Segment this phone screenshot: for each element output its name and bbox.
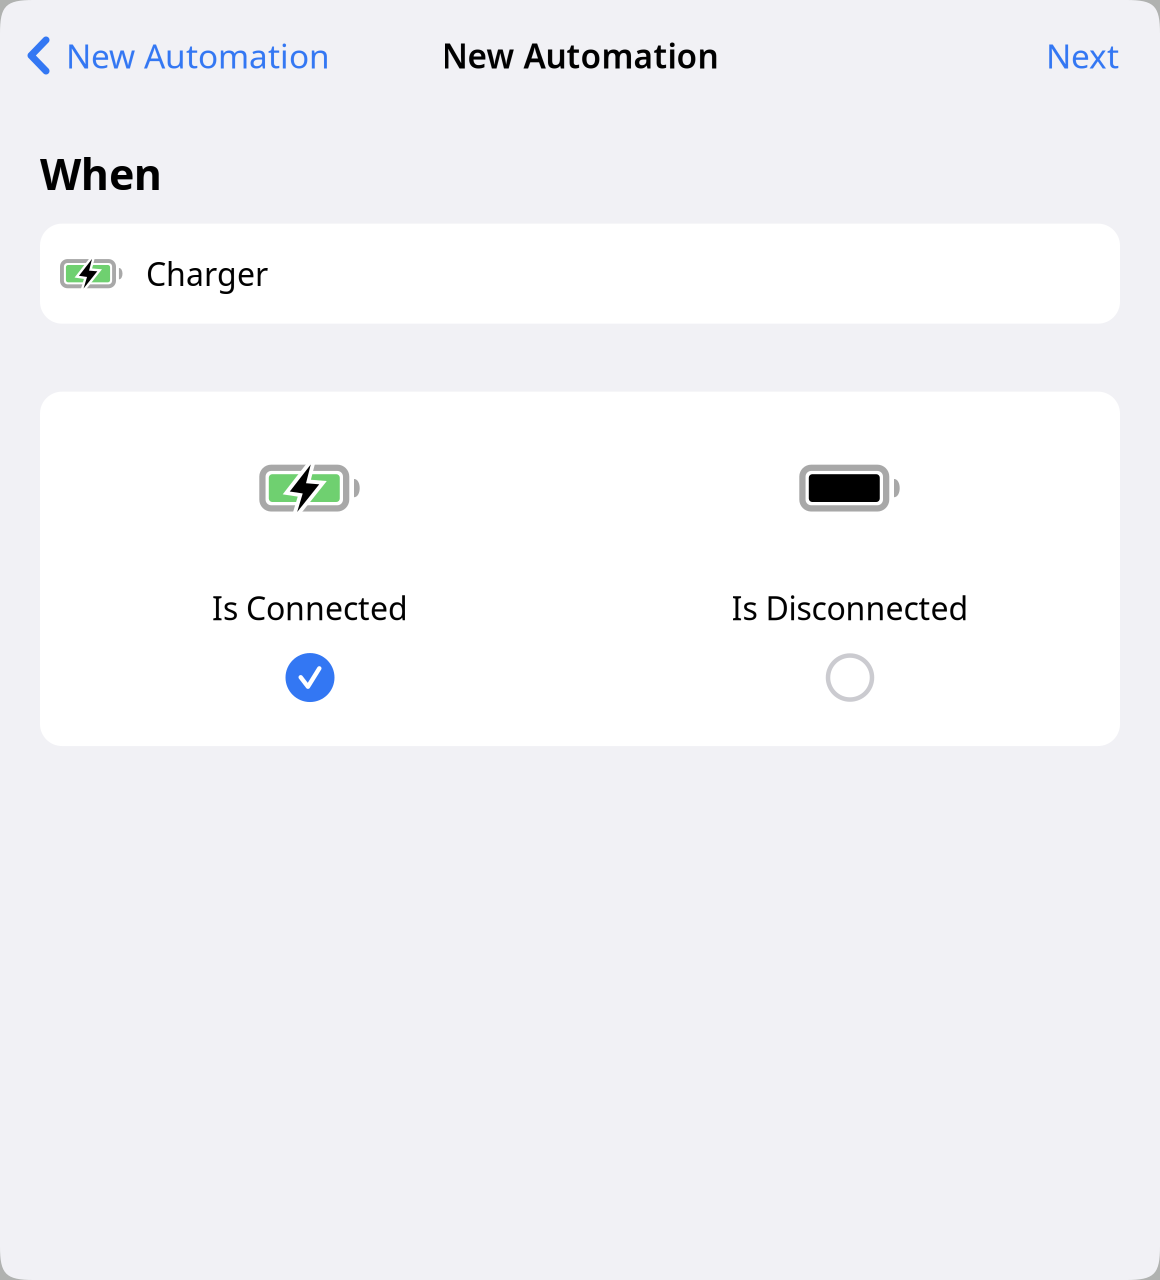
staticText: Is Connected [212, 587, 408, 629]
staticText: When [40, 145, 162, 202]
button[interactable]: Next [1046, 23, 1119, 88]
button[interactable]: New Automation [31, 23, 330, 88]
staticText: Next [1046, 33, 1119, 78]
button[interactable]: Is Disconnected [580, 465, 1120, 702]
button[interactable]: Is Connected [40, 465, 580, 702]
staticText: New Automation [66, 33, 330, 78]
staticText: New Automation [441, 33, 718, 78]
staticText: Is Disconnected [731, 587, 968, 629]
button[interactable]: Charger [40, 224, 1120, 324]
staticText: Charger [146, 252, 268, 295]
